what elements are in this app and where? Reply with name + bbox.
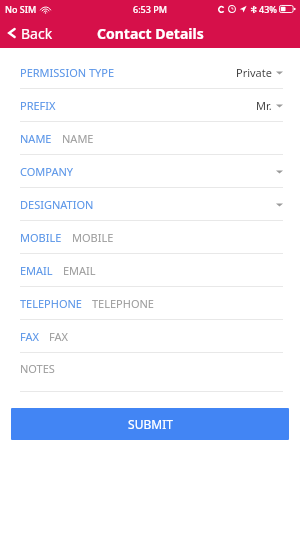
button[interactable]: TELEPHONE (0, 287, 300, 319)
staticText: FAX (49, 329, 68, 344)
staticText: DESIGNATION (20, 197, 94, 212)
staticText: 6:53 PM (133, 3, 167, 15)
button[interactable]: NAME (0, 122, 300, 154)
button[interactable]: DESIGNATION (0, 188, 300, 220)
button[interactable]: EMAIL (0, 254, 300, 286)
staticText: MOBILE (72, 230, 114, 245)
staticText: EMAIL (63, 263, 96, 278)
staticText: PERMISSION TYPE (20, 65, 115, 80)
staticText: 43% (259, 3, 277, 15)
staticText: Back (21, 24, 53, 43)
staticText: TELEPHONE (92, 296, 154, 311)
staticText: NAME (62, 131, 94, 146)
button[interactable]: MOBILE (0, 221, 300, 253)
staticText: NOTES (20, 361, 55, 376)
staticText: PREFIX (20, 98, 56, 113)
staticText: SUBMIT (128, 416, 173, 432)
staticText: No SIM (5, 3, 37, 15)
button[interactable]: SUBMIT (11, 408, 289, 440)
button[interactable]: FAX (0, 320, 300, 352)
staticText: Mr. (256, 98, 272, 113)
staticText: TELEPHONE (20, 296, 82, 311)
staticText: FAX (20, 329, 39, 344)
button[interactable]: Back (0, 18, 63, 48)
button[interactable]: COMPANY (0, 155, 300, 187)
staticText: Private (236, 65, 272, 80)
staticText: EMAIL (20, 263, 53, 278)
button[interactable]: PREFIX (0, 89, 300, 121)
staticText: NAME (20, 131, 52, 146)
staticText: COMPANY (20, 164, 74, 179)
staticText: MOBILE (20, 230, 62, 245)
button[interactable]: PERMISSION TYPE (0, 56, 300, 88)
button[interactable]: NOTES (0, 353, 300, 391)
staticText: Contact Details (97, 24, 204, 43)
